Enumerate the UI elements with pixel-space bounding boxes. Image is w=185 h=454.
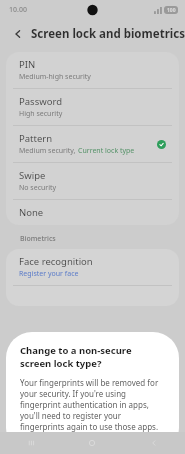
button[interactable]: Password bbox=[6, 89, 179, 125]
button[interactable]: PIN bbox=[6, 52, 179, 88]
staticText: None bbox=[19, 206, 44, 219]
button[interactable]: None bbox=[6, 200, 179, 225]
staticText: Biometrics bbox=[20, 234, 56, 244]
staticText: Current lock type bbox=[78, 146, 135, 156]
staticText: Medium-high security bbox=[19, 72, 91, 82]
staticText: Swipe bbox=[19, 169, 46, 182]
staticText: Password bbox=[19, 95, 62, 108]
staticText: Your fingerprints will be removed for yo… bbox=[20, 377, 165, 432]
staticText: Pattern bbox=[19, 132, 53, 145]
staticText: High security bbox=[19, 109, 63, 119]
staticText: 100 bbox=[167, 7, 176, 14]
button[interactable]: Back bbox=[8, 24, 28, 44]
staticText: PIN bbox=[19, 58, 36, 71]
staticText: Face recognition bbox=[19, 255, 93, 268]
staticText: Change to a non-secure screen lock type? bbox=[20, 344, 165, 370]
staticText: Screen lock and biometrics bbox=[31, 26, 185, 42]
button[interactable]: Swipe bbox=[6, 163, 179, 199]
button[interactable]: Pattern bbox=[6, 126, 179, 162]
staticText: Medium security, bbox=[19, 146, 78, 156]
staticText: No security bbox=[19, 183, 57, 193]
button[interactable]: Face recognition bbox=[6, 249, 179, 285]
staticText: 10.00 bbox=[9, 5, 27, 15]
staticText: Register your face bbox=[19, 269, 79, 279]
